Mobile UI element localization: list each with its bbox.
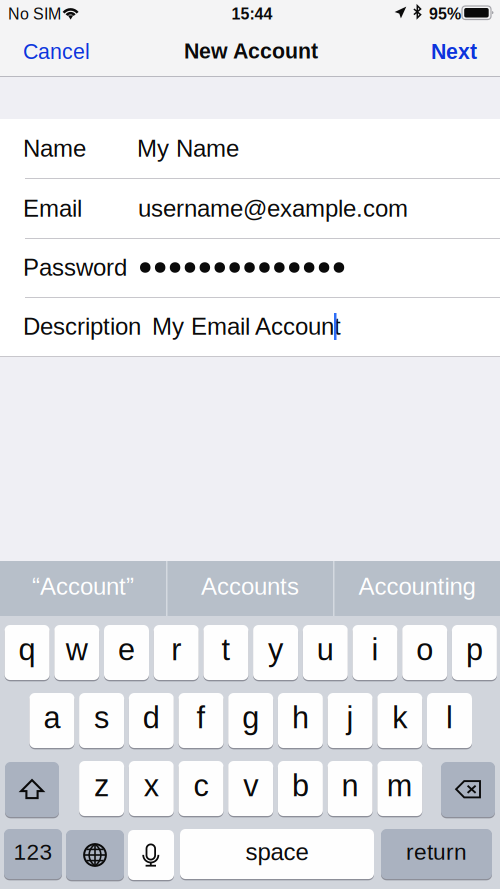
- staticText: return: [406, 839, 467, 865]
- staticText: My Email Account: [152, 313, 341, 340]
- staticText: m: [387, 768, 413, 803]
- staticText: b: [292, 768, 309, 803]
- button[interactable]: Dictation: [128, 829, 174, 881]
- staticText: f: [196, 700, 205, 735]
- staticText: Next: [431, 40, 477, 63]
- staticText: i: [371, 632, 378, 667]
- staticText: u: [317, 632, 334, 667]
- staticText: g: [242, 700, 259, 735]
- button[interactable]: “Account”: [0, 561, 166, 616]
- button[interactable]: space: [180, 829, 374, 881]
- staticText: No SIM: [8, 5, 61, 23]
- button[interactable]: u: [303, 625, 348, 682]
- staticText: k: [392, 700, 407, 735]
- button[interactable]: Email: [0, 179, 500, 238]
- staticText: w: [66, 632, 88, 667]
- staticText: c: [193, 768, 208, 803]
- staticText: My Name: [137, 135, 239, 162]
- button[interactable]: j: [328, 693, 373, 750]
- staticText: e: [118, 632, 135, 667]
- button[interactable]: return: [381, 829, 492, 881]
- staticText: username@example.com: [138, 195, 408, 222]
- staticText: Cancel: [23, 40, 90, 63]
- staticText: 95%: [429, 5, 461, 23]
- staticText: x: [144, 768, 159, 803]
- button[interactable]: z: [79, 761, 124, 818]
- staticText: z: [94, 768, 109, 803]
- button[interactable]: y: [253, 625, 298, 682]
- staticText: space: [245, 839, 308, 865]
- button[interactable]: Description: [0, 297, 500, 356]
- button[interactable]: b: [278, 761, 323, 818]
- staticText: n: [342, 768, 359, 803]
- button[interactable]: d: [129, 693, 174, 750]
- button[interactable]: l: [427, 693, 472, 750]
- button[interactable]: p: [452, 625, 497, 682]
- button[interactable]: a: [29, 693, 74, 750]
- button[interactable]: k: [377, 693, 422, 750]
- staticText: j: [347, 700, 354, 735]
- button[interactable]: Shift: [5, 761, 59, 818]
- staticText: o: [416, 632, 433, 667]
- staticText: t: [221, 632, 230, 667]
- staticText: p: [466, 632, 483, 667]
- staticText: Accounting: [358, 573, 475, 600]
- staticText: Accounts: [201, 573, 299, 600]
- button[interactable]: h: [278, 693, 323, 750]
- button[interactable]: t: [203, 625, 248, 682]
- staticText: l: [446, 700, 453, 735]
- button[interactable]: r: [154, 625, 199, 682]
- staticText: Password: [23, 254, 127, 281]
- button[interactable]: v: [228, 761, 273, 818]
- staticText: New Account: [184, 39, 318, 63]
- button[interactable]: Next keyboard: [66, 829, 124, 881]
- button[interactable]: s: [79, 693, 124, 750]
- staticText: q: [19, 632, 36, 667]
- staticText: a: [43, 700, 60, 735]
- staticText: v: [243, 768, 258, 803]
- button[interactable]: n: [328, 761, 373, 818]
- button[interactable]: q: [5, 625, 50, 682]
- staticText: 15:44: [231, 5, 272, 23]
- staticText: Email: [23, 195, 82, 222]
- staticText: Name: [23, 135, 86, 162]
- button[interactable]: c: [178, 761, 223, 818]
- button[interactable]: Delete: [441, 761, 495, 818]
- staticText: 123: [13, 839, 52, 865]
- staticText: h: [292, 700, 309, 735]
- staticText: “Account”: [32, 573, 134, 600]
- button[interactable]: g: [228, 693, 273, 750]
- button[interactable]: Accounts: [167, 561, 333, 616]
- button[interactable]: i: [352, 625, 397, 682]
- button[interactable]: m: [377, 761, 422, 818]
- button[interactable]: x: [129, 761, 174, 818]
- button[interactable]: w: [54, 625, 99, 682]
- button[interactable]: o: [402, 625, 447, 682]
- staticText: Description: [23, 313, 141, 340]
- staticText: d: [143, 700, 160, 735]
- staticText: y: [268, 632, 283, 667]
- button[interactable]: e: [104, 625, 149, 682]
- staticText: s: [94, 700, 109, 735]
- button[interactable]: Cancel: [23, 36, 113, 67]
- button[interactable]: f: [178, 693, 223, 750]
- button[interactable]: Name: [0, 119, 500, 178]
- button[interactable]: 123: [4, 829, 62, 881]
- button[interactable]: Accounting: [334, 561, 500, 616]
- button[interactable]: Next: [397, 36, 477, 67]
- staticText: r: [171, 632, 181, 667]
- button[interactable]: Password: [0, 238, 500, 297]
